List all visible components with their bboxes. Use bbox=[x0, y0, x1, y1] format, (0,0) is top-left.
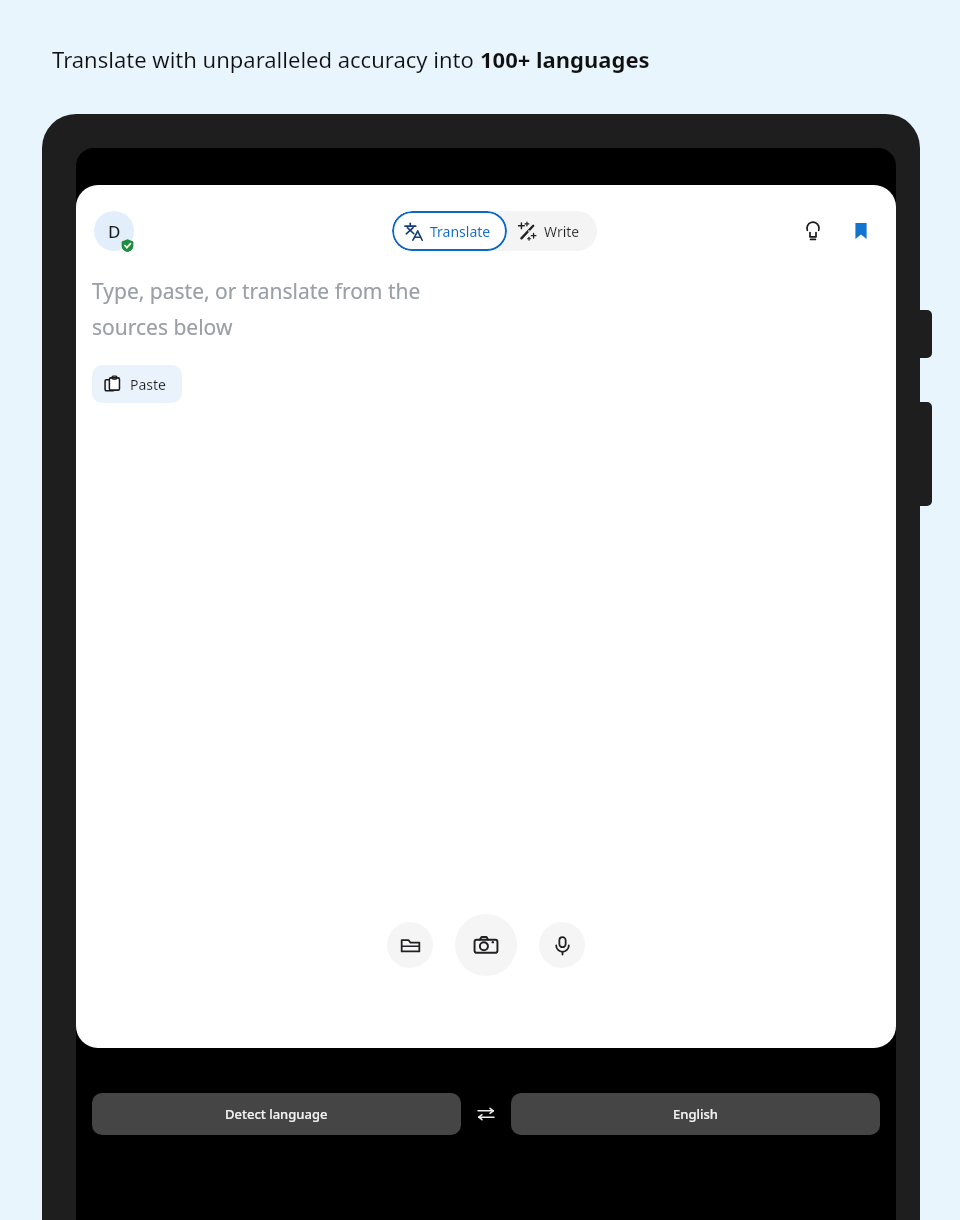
button[interactable]: Saved bbox=[840, 210, 882, 252]
staticText: Write bbox=[544, 222, 580, 241]
button[interactable]: Camera bbox=[455, 914, 517, 976]
staticText: Type, paste, or translate from the bbox=[92, 277, 421, 306]
button[interactable]: Paste bbox=[92, 365, 182, 403]
button[interactable]: Voice input bbox=[539, 922, 585, 968]
staticText: Detect language bbox=[225, 1105, 328, 1123]
button[interactable]: Translate bbox=[392, 211, 507, 251]
button[interactable]: Write bbox=[507, 211, 597, 251]
button[interactable]: Open file bbox=[387, 922, 433, 968]
staticText: sources below bbox=[92, 313, 233, 342]
button[interactable]: Account bbox=[92, 209, 136, 253]
button[interactable]: English bbox=[511, 1093, 880, 1135]
staticText: Translate with unparalleled accuracy int… bbox=[52, 44, 480, 74]
staticText: Paste bbox=[130, 375, 166, 394]
staticText: English bbox=[673, 1105, 718, 1123]
staticText: Translate bbox=[430, 222, 491, 241]
button[interactable]: Swap languages bbox=[461, 1088, 511, 1140]
button[interactable]: Detect language bbox=[92, 1093, 461, 1135]
button[interactable]: Tips bbox=[792, 210, 834, 252]
staticText: D bbox=[108, 220, 121, 243]
staticText: 100+ languages bbox=[480, 44, 650, 74]
